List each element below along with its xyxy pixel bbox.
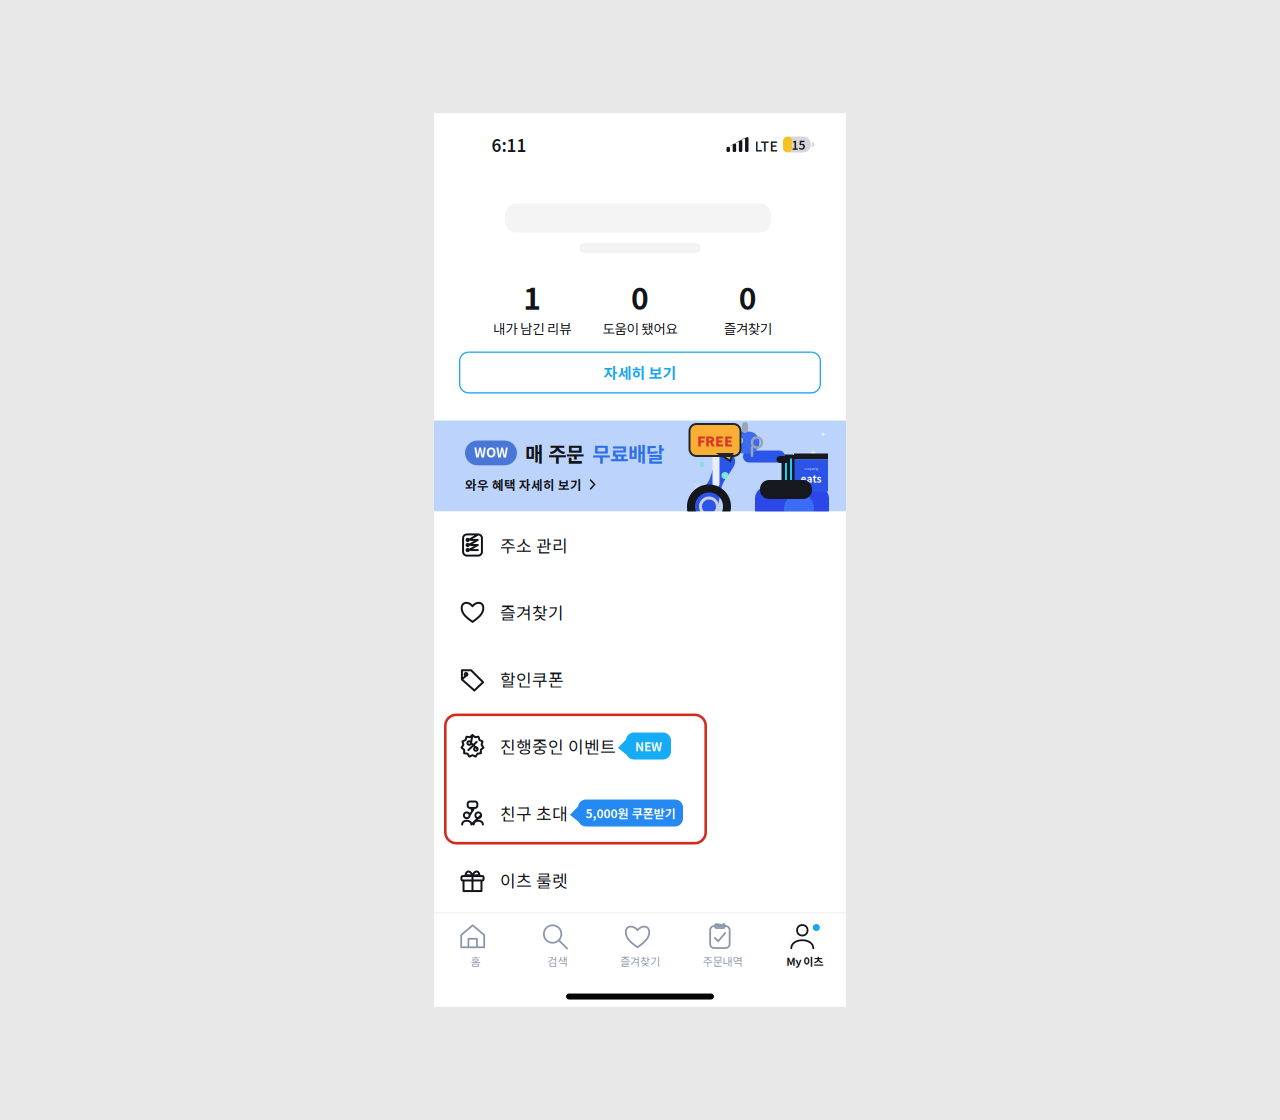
button[interactable]: 할인쿠폰 [434,645,846,712]
staticText: WOW [474,442,508,461]
staticText: 1 [523,275,541,318]
staticText: 0 [739,275,757,318]
staticText: 즐겨찾기 [500,600,564,624]
staticText: FREE [697,430,733,451]
staticText: ✦ [819,430,826,439]
staticText: 주소 관리 [500,533,568,557]
staticText: 이츠 룰렛 [500,868,568,892]
button[interactable]: 홈 [434,924,516,969]
button[interactable]: 자세히 보기 [459,351,821,393]
staticText: eats [800,471,821,486]
staticText: 15 [791,136,805,153]
staticText: 5,000원 쿠폰받기 [585,804,675,822]
staticText: 주문내역 [702,953,742,969]
button[interactable]: ✦ [434,420,846,511]
staticText: 친구 초대 [500,801,568,825]
staticText: ✦ [808,447,817,460]
staticText: 무료배달 [592,438,664,467]
button[interactable]: 진행중인 이벤트 [434,712,846,779]
button[interactable]: My 이츠 [764,924,846,969]
button[interactable]: 이츠 룰렛 [434,846,846,913]
button[interactable]: 즐겨찾기 [599,924,681,969]
staticText: ✕ [693,481,701,492]
staticText: 6:11 [491,132,526,157]
staticText: 즐겨찾기 [724,318,772,338]
staticText: 검색 [548,953,568,969]
staticText: NEW [635,737,662,755]
staticText: LTE [754,135,777,156]
staticText: 자세히 보기 [603,362,676,383]
staticText: 진행중인 이벤트 [500,734,616,758]
staticText: 0 [631,275,649,318]
staticText: 즐겨찾기 [620,953,660,969]
staticText: coupang [804,465,818,471]
button[interactable]: 검색 [516,924,599,969]
staticText: 도움이 됐어요 [602,318,677,338]
staticText: My 이츠 [786,953,823,969]
staticText: 할인쿠폰 [500,667,564,691]
staticText: 홈 [470,953,480,969]
staticText: 내가 남긴 리뷰 [493,318,571,338]
button[interactable]: 주소 관리 [434,511,846,578]
staticText: 매 주문 [525,438,584,467]
staticText: 와우 혜택 자세히 보기 [465,475,582,493]
button[interactable]: 즐겨찾기 [434,578,846,645]
button[interactable]: 친구 초대 [434,779,846,846]
button[interactable]: 주문내역 [681,924,764,969]
